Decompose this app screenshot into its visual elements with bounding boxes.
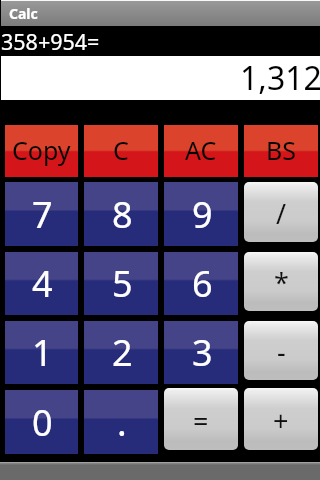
button[interactable]: 6 — [164, 252, 238, 315]
staticText: 6 — [192, 259, 213, 308]
button[interactable]: BS — [244, 125, 318, 177]
staticText: 3 — [192, 328, 213, 377]
staticText: + — [273, 402, 289, 439]
button[interactable]: AC — [164, 125, 238, 177]
staticText: - — [277, 333, 286, 370]
button[interactable]: Copy — [5, 125, 78, 177]
staticText: 5 — [112, 259, 133, 308]
button[interactable]: 4 — [5, 252, 78, 315]
button[interactable]: = — [164, 388, 238, 450]
staticText: / — [276, 195, 287, 232]
button[interactable]: + — [244, 388, 318, 450]
staticText: . — [117, 398, 127, 447]
button[interactable]: 5 — [84, 252, 158, 315]
button[interactable]: 0 — [5, 390, 78, 454]
staticText: = — [193, 402, 209, 439]
staticText: Calc — [9, 4, 38, 23]
staticText: 358+954= — [1, 27, 100, 56]
staticText: 2 — [112, 328, 133, 377]
button[interactable]: 7 — [5, 182, 78, 246]
staticText: 8 — [112, 190, 133, 239]
button[interactable]: - — [244, 321, 318, 380]
button[interactable]: C — [84, 125, 158, 177]
staticText: BS — [266, 133, 296, 167]
staticText: Copy — [12, 133, 71, 167]
button[interactable]: / — [244, 182, 318, 242]
staticText: 9 — [192, 190, 213, 239]
staticText: C — [113, 133, 129, 167]
button[interactable]: 2 — [84, 321, 158, 384]
staticText: 1,312 — [240, 56, 320, 100]
staticText: 4 — [32, 259, 53, 308]
button[interactable]: 3 — [164, 321, 238, 384]
staticText: 0 — [32, 398, 53, 447]
button[interactable]: . — [84, 390, 158, 454]
staticText: 7 — [32, 190, 53, 239]
button[interactable]: 9 — [164, 182, 238, 246]
button[interactable]: 8 — [84, 182, 158, 246]
staticText: AC — [185, 133, 217, 167]
button[interactable]: 1 — [5, 321, 78, 384]
button[interactable]: * — [244, 252, 318, 311]
staticText: 1 — [32, 328, 53, 377]
staticText: * — [274, 264, 289, 301]
